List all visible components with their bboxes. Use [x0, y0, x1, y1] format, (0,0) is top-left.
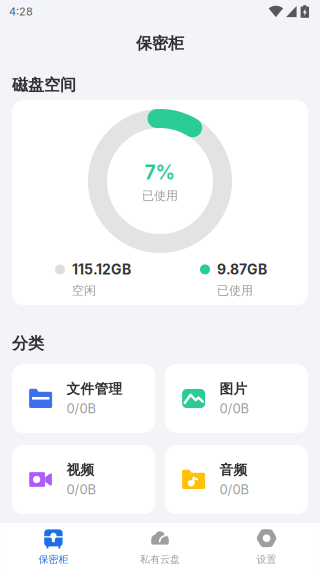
staticText: 4:28	[9, 5, 33, 18]
staticText: 空闲	[72, 283, 96, 298]
staticText: 设置	[257, 553, 277, 566]
button[interactable]: 视频	[12, 445, 155, 514]
staticText: 音频	[220, 461, 248, 479]
staticText: 保密柜	[136, 33, 184, 54]
staticText: 9.87GB	[217, 261, 267, 278]
staticText: 0/0B	[220, 401, 250, 416]
staticText: 视频	[67, 461, 95, 479]
staticText: 0/0B	[67, 401, 97, 416]
button[interactable]: 文件管理	[12, 364, 155, 433]
button[interactable]: 私有云盘	[107, 523, 213, 569]
staticText: 0/0B	[220, 482, 250, 497]
staticText: 已使用	[142, 188, 178, 203]
staticText: 115.12GB	[72, 261, 131, 278]
staticText: 文件管理	[67, 380, 123, 398]
button[interactable]: 音频	[165, 445, 308, 514]
staticText: 0/0B	[67, 482, 97, 497]
staticText: 分类	[12, 333, 44, 354]
staticText: 磁盘空间	[12, 75, 76, 95]
staticText: 已使用	[217, 283, 253, 298]
button[interactable]: 保密柜	[0, 523, 107, 569]
staticText: 7%	[144, 161, 175, 184]
staticText: 私有云盘	[140, 553, 180, 566]
button[interactable]: 设置	[213, 523, 320, 569]
button[interactable]: 图片	[165, 364, 308, 433]
staticText: 保密柜	[38, 553, 68, 566]
staticText: 图片	[220, 380, 248, 398]
